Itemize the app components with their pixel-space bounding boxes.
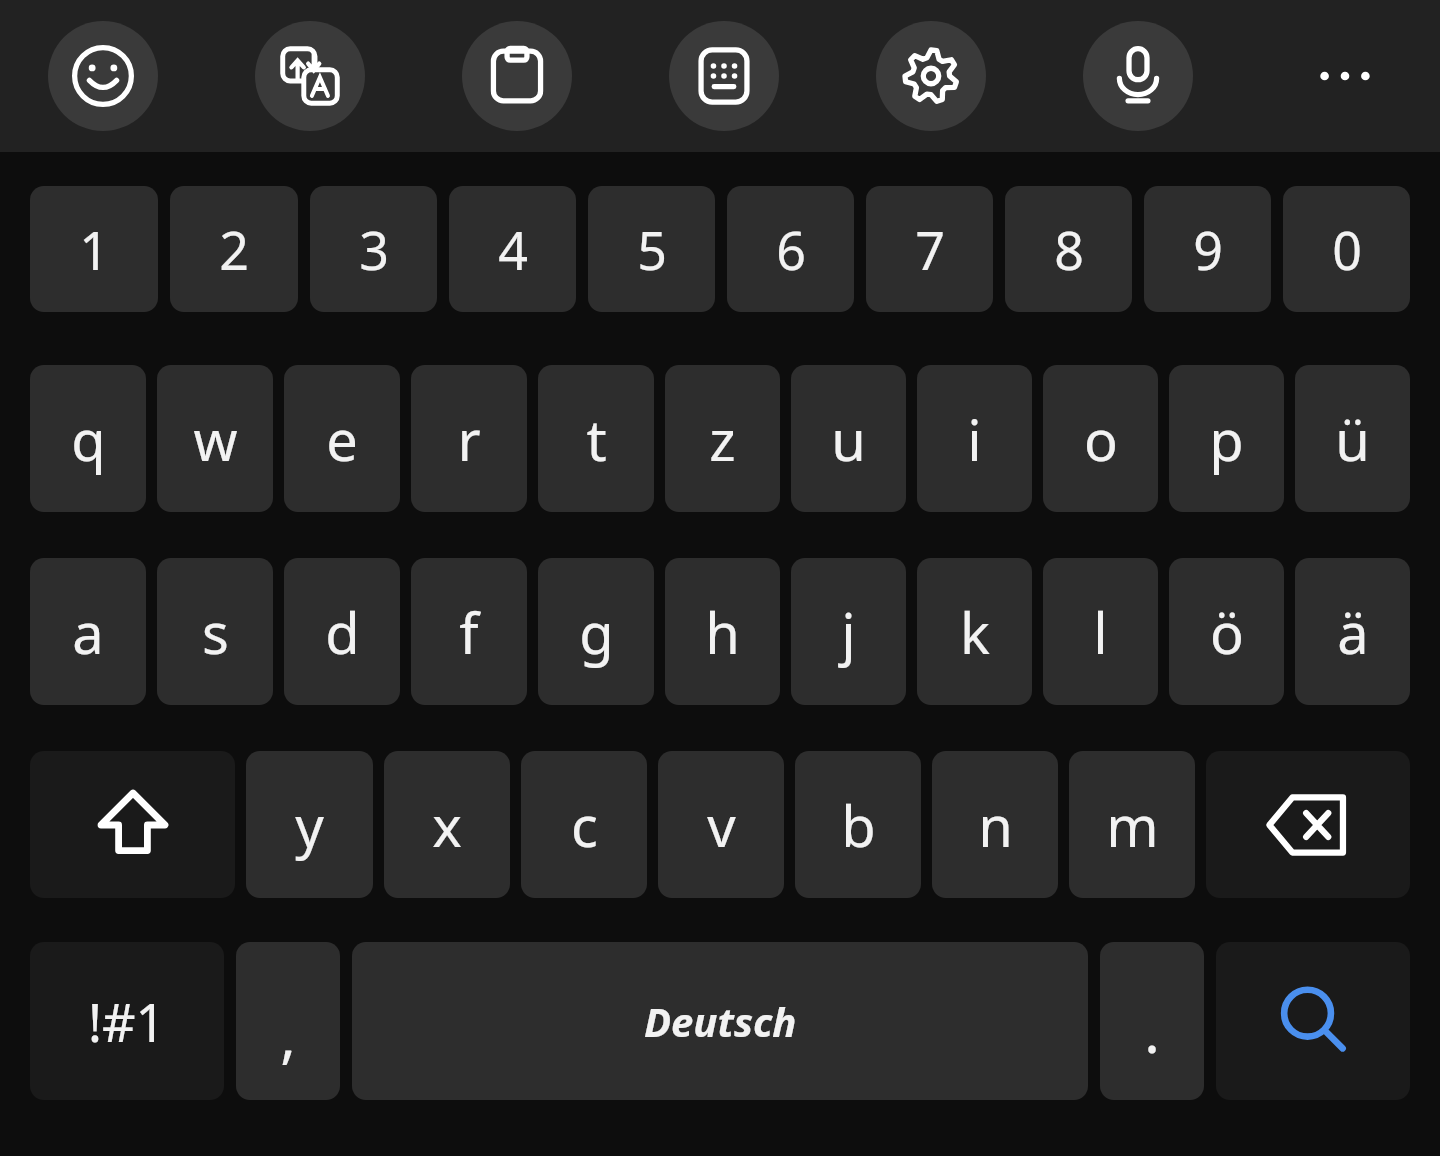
button[interactable]: 0 <box>1283 186 1410 312</box>
button[interactable]: ä <box>1295 558 1410 705</box>
staticText: j <box>841 594 856 670</box>
button[interactable]: i <box>917 365 1032 512</box>
button[interactable]: l <box>1043 558 1158 705</box>
button[interactable]: More options <box>1290 21 1400 131</box>
staticText: t <box>586 401 607 477</box>
staticText: Deutsch <box>644 994 797 1048</box>
staticText: ä <box>1337 594 1369 670</box>
staticText: a <box>72 594 104 670</box>
button[interactable]: t <box>538 365 654 512</box>
staticText: u <box>831 401 866 477</box>
button[interactable]: m <box>1069 751 1195 898</box>
button[interactable]: z <box>665 365 780 512</box>
button[interactable]: Voice input <box>1083 21 1193 131</box>
button[interactable]: o <box>1043 365 1158 512</box>
staticText: s <box>202 594 229 670</box>
button[interactable]: ü <box>1295 365 1410 512</box>
staticText: h <box>705 594 740 670</box>
staticText: g <box>579 594 614 670</box>
button[interactable]: Settings <box>876 21 986 131</box>
button[interactable]: Emoji <box>48 21 158 131</box>
staticText: 6 <box>776 214 806 285</box>
staticText: k <box>960 594 990 670</box>
staticText: d <box>325 594 360 670</box>
staticText: p <box>1209 401 1244 477</box>
staticText: y <box>295 787 324 863</box>
staticText: 4 <box>498 214 528 285</box>
staticText: o <box>1084 401 1118 477</box>
button[interactable]: x <box>384 751 510 898</box>
staticText: n <box>978 787 1013 863</box>
staticText: z <box>709 401 736 477</box>
button[interactable]: Deutsch <box>352 942 1088 1100</box>
button[interactable]: v <box>658 751 784 898</box>
button[interactable]: a <box>30 558 146 705</box>
button[interactable]: p <box>1169 365 1284 512</box>
button[interactable]: k <box>917 558 1032 705</box>
staticText: q <box>71 401 106 477</box>
staticText: v <box>707 787 736 863</box>
button[interactable]: , <box>236 942 340 1100</box>
staticText: e <box>326 401 358 477</box>
button[interactable]: Shift <box>30 751 235 898</box>
button[interactable]: u <box>791 365 906 512</box>
staticText: . <box>1144 991 1160 1070</box>
staticText: 7 <box>915 214 945 285</box>
staticText: 8 <box>1054 214 1084 285</box>
button[interactable]: Search <box>1216 942 1410 1100</box>
button[interactable]: Keyboard modes <box>669 21 779 131</box>
staticText: 3 <box>359 214 389 285</box>
button[interactable]: Translate <box>255 21 365 131</box>
button[interactable]: n <box>932 751 1058 898</box>
staticText: i <box>967 401 982 477</box>
button[interactable]: 1 <box>30 186 158 312</box>
button[interactable]: 6 <box>727 186 854 312</box>
button[interactable]: ö <box>1169 558 1284 705</box>
staticText: 5 <box>637 214 667 285</box>
button[interactable]: r <box>411 365 527 512</box>
button[interactable]: d <box>284 558 400 705</box>
staticText: b <box>841 787 876 863</box>
staticText: w <box>193 401 238 477</box>
button[interactable]: 7 <box>866 186 993 312</box>
staticText: m <box>1106 787 1159 863</box>
staticText: c <box>571 787 598 863</box>
button[interactable]: b <box>795 751 921 898</box>
staticText: 0 <box>1332 214 1362 285</box>
staticText: !#1 <box>88 986 166 1057</box>
button[interactable]: j <box>791 558 906 705</box>
staticText: 2 <box>219 214 249 285</box>
staticText: f <box>459 594 479 670</box>
button[interactable]: e <box>284 365 400 512</box>
staticText: l <box>1093 594 1108 670</box>
staticText: x <box>432 787 462 863</box>
button[interactable]: 8 <box>1005 186 1132 312</box>
button[interactable]: 2 <box>170 186 298 312</box>
button[interactable]: !#1 <box>30 942 224 1100</box>
button[interactable]: Clipboard <box>462 21 572 131</box>
staticText: 9 <box>1193 214 1223 285</box>
button[interactable]: 3 <box>310 186 437 312</box>
staticText: r <box>457 401 481 477</box>
button[interactable]: f <box>411 558 527 705</box>
staticText: 1 <box>79 214 109 285</box>
button[interactable]: c <box>521 751 647 898</box>
staticText: ü <box>1335 401 1370 477</box>
button[interactable]: s <box>157 558 273 705</box>
button[interactable]: y <box>246 751 373 898</box>
button[interactable]: h <box>665 558 780 705</box>
button[interactable]: 5 <box>588 186 715 312</box>
button[interactable]: 4 <box>449 186 576 312</box>
button[interactable]: 9 <box>1144 186 1271 312</box>
button[interactable]: . <box>1100 942 1204 1100</box>
button[interactable]: q <box>30 365 146 512</box>
button[interactable]: g <box>538 558 654 705</box>
button[interactable]: w <box>157 365 273 512</box>
staticText: ö <box>1210 594 1244 670</box>
button[interactable]: Backspace <box>1206 751 1410 898</box>
staticText: , <box>280 995 296 1074</box>
